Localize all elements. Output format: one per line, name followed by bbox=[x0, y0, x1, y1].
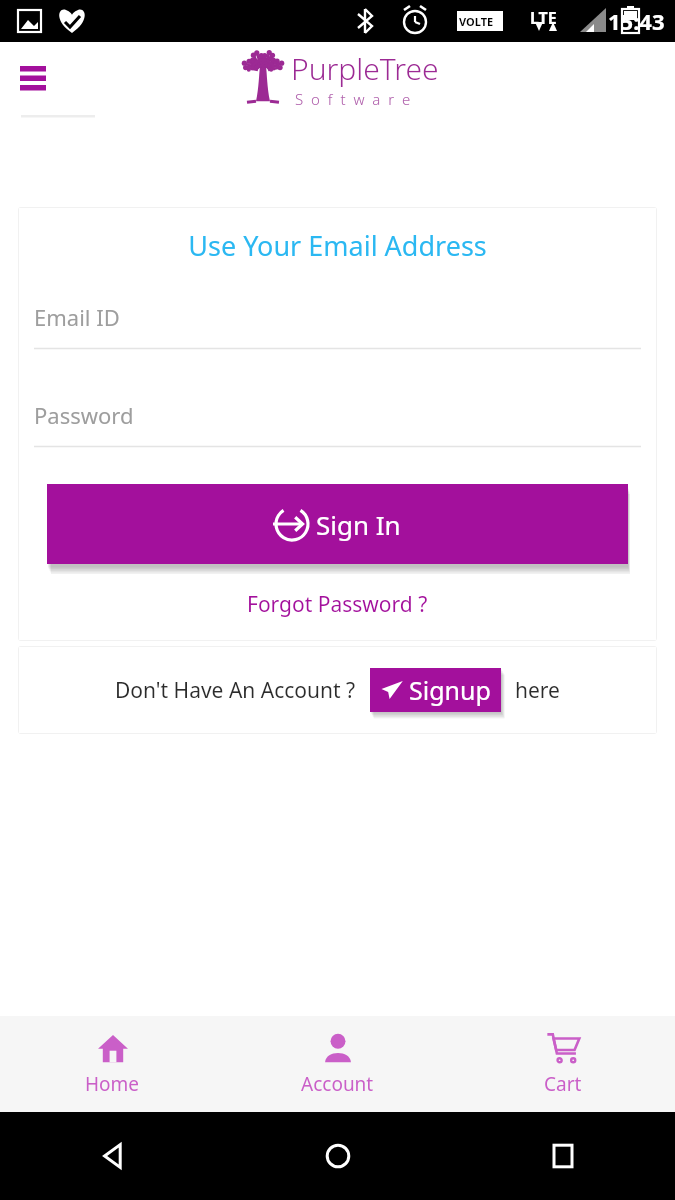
staticText: Password bbox=[34, 400, 134, 430]
staticText: S o f t w a r e bbox=[295, 89, 413, 109]
staticText: Use Your Email Address bbox=[18, 227, 657, 264]
button[interactable]: Forgot Password ? bbox=[18, 590, 657, 619]
button[interactable]: Signup bbox=[370, 668, 501, 712]
staticText: Account bbox=[301, 1071, 374, 1097]
button[interactable]: Account bbox=[225, 1016, 450, 1112]
staticText: Home bbox=[85, 1071, 140, 1097]
staticText: LTE bbox=[530, 7, 557, 29]
staticText: Sign In bbox=[316, 507, 401, 542]
staticText: Don't Have An Account ? bbox=[115, 676, 356, 705]
staticText: Signup bbox=[409, 673, 491, 707]
button[interactable]: Cart bbox=[450, 1016, 675, 1112]
button[interactable]: Back bbox=[0, 1112, 225, 1200]
button[interactable]: PurpleTree bbox=[237, 48, 439, 109]
button[interactable]: Password bbox=[34, 400, 641, 448]
staticText: Email ID bbox=[34, 302, 120, 332]
staticText: Forgot Password ? bbox=[247, 590, 428, 619]
staticText: PurpleTree bbox=[291, 48, 439, 89]
staticText: here bbox=[515, 676, 560, 705]
button[interactable]: Recent apps bbox=[450, 1112, 675, 1200]
staticText: 15:43 bbox=[608, 6, 665, 36]
staticText: Cart bbox=[544, 1071, 582, 1097]
button[interactable]: Email ID bbox=[34, 302, 641, 350]
button[interactable]: Sign In bbox=[47, 484, 628, 564]
button[interactable]: Home bbox=[0, 1016, 225, 1112]
button[interactable]: Home bbox=[225, 1112, 450, 1200]
staticText: VOLTE bbox=[459, 14, 494, 29]
button[interactable]: Menu bbox=[14, 60, 52, 92]
